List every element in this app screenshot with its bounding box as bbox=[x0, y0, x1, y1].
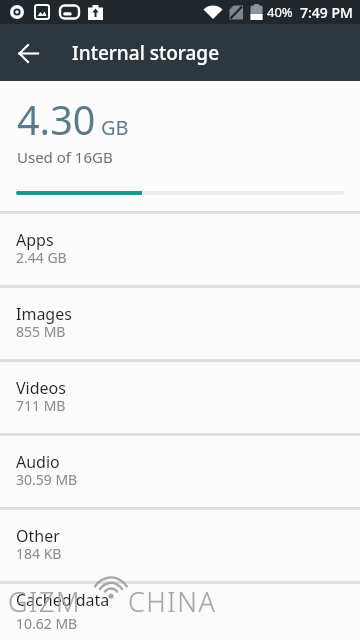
button[interactable]: Videos bbox=[0, 362, 360, 433]
staticText: 40% bbox=[267, 3, 293, 21]
staticText: Apps bbox=[16, 229, 54, 251]
staticText: 855 MB bbox=[16, 322, 66, 341]
staticText: Internal storage bbox=[72, 40, 220, 66]
staticText: 30.59 MB bbox=[16, 470, 78, 489]
staticText: 2.44 GB bbox=[16, 248, 67, 267]
button[interactable]: Cached data bbox=[0, 584, 360, 640]
button[interactable]: Other bbox=[0, 510, 360, 581]
staticText: Audio bbox=[16, 451, 60, 473]
staticText: 4.30 bbox=[17, 93, 96, 147]
button[interactable]: Apps bbox=[0, 214, 360, 285]
staticText: Videos bbox=[16, 377, 66, 399]
staticText: 10.62 MB bbox=[16, 614, 78, 633]
button[interactable]: Images bbox=[0, 288, 360, 359]
staticText: GIZM bbox=[8, 583, 82, 620]
staticText: 184 KB bbox=[16, 544, 62, 563]
staticText: 7:49 PM bbox=[300, 3, 353, 22]
staticText: Used of 16GB bbox=[17, 147, 113, 167]
button[interactable]: Audio bbox=[0, 436, 360, 507]
staticText: CHINA bbox=[128, 583, 217, 620]
staticText: 711 MB bbox=[16, 396, 66, 415]
staticText: GB bbox=[101, 114, 129, 141]
staticText: Cached data bbox=[16, 589, 110, 611]
staticText: Images bbox=[16, 303, 72, 325]
button[interactable] bbox=[0, 25, 56, 81]
staticText: Other bbox=[16, 525, 60, 547]
